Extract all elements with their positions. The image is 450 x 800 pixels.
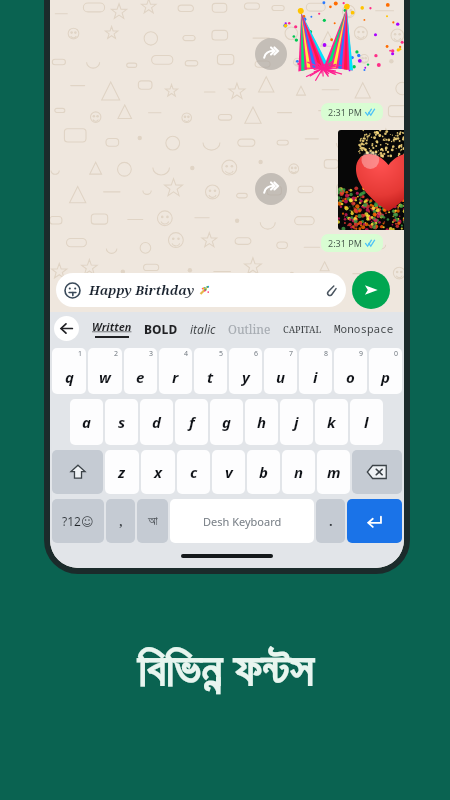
button[interactable]: . xyxy=(316,499,345,543)
button[interactable]: CAPITAL xyxy=(277,319,328,339)
button[interactable]: 9 xyxy=(334,348,367,394)
staticText: 3 xyxy=(149,349,154,359)
staticText: v xyxy=(225,462,233,482)
button[interactable]: Forward xyxy=(255,173,287,205)
staticText: 5 xyxy=(219,349,224,359)
staticText: e xyxy=(136,367,145,387)
button[interactable]: z xyxy=(105,450,139,494)
button[interactable]: Written xyxy=(86,319,138,338)
staticText: h xyxy=(257,412,267,432)
button[interactable]: italic xyxy=(184,317,222,341)
staticText: o xyxy=(346,367,355,387)
button[interactable]: 8 xyxy=(299,348,332,394)
staticText: 7 xyxy=(289,349,294,359)
button[interactable]: Monospace xyxy=(328,317,400,340)
staticText: ?12☺ xyxy=(62,513,94,529)
button[interactable]: g xyxy=(210,399,243,445)
staticText: s xyxy=(118,412,126,432)
button[interactable]: , xyxy=(106,499,135,543)
staticText: Happy Birthday xyxy=(89,281,195,299)
button[interactable]: x xyxy=(141,450,175,494)
staticText: f xyxy=(189,412,195,432)
button[interactable]: 6 xyxy=(229,348,262,394)
button[interactable]: BOLD xyxy=(138,317,184,341)
button[interactable]: c xyxy=(177,450,210,494)
button[interactable]: 0 xyxy=(369,348,402,394)
button[interactable]: Enter xyxy=(347,499,402,543)
button[interactable]: s xyxy=(105,399,138,445)
staticText: p xyxy=(381,367,390,387)
button[interactable]: n xyxy=(282,450,315,494)
other: Attach xyxy=(324,283,338,297)
button[interactable]: f xyxy=(175,399,208,445)
staticText: , xyxy=(119,512,123,530)
button[interactable]: Forward xyxy=(255,38,287,70)
staticText: k xyxy=(327,412,336,432)
button[interactable]: Desh Keyboard xyxy=(170,499,314,543)
button[interactable]: 4 xyxy=(159,348,192,394)
staticText: 6 xyxy=(254,349,259,359)
button[interactable]: Outline xyxy=(222,317,277,341)
staticText: বিভিন্ন ফন্টস xyxy=(137,636,313,700)
staticText: d xyxy=(152,412,161,432)
staticText: l xyxy=(364,412,369,432)
staticText: CAPITAL xyxy=(283,323,322,335)
button[interactable]: l xyxy=(350,399,383,445)
staticText: r xyxy=(172,367,179,387)
staticText: g xyxy=(222,412,231,432)
staticText: Outline xyxy=(228,321,271,337)
staticText: x xyxy=(154,462,163,482)
staticText: . xyxy=(329,512,333,530)
button[interactable]: v xyxy=(212,450,245,494)
staticText: 1 xyxy=(78,349,83,359)
button[interactable]: Language xyxy=(137,499,168,543)
staticText: q xyxy=(65,367,74,387)
button[interactable]: 1 xyxy=(52,348,86,394)
staticText: Monospace xyxy=(334,321,394,336)
button[interactable]: Back xyxy=(54,316,79,341)
button[interactable]: Shift xyxy=(52,450,103,494)
staticText: j xyxy=(294,412,299,432)
button[interactable]: Send xyxy=(352,271,390,309)
staticText: Written xyxy=(92,319,132,334)
button[interactable]: h xyxy=(245,399,278,445)
staticText: 2 xyxy=(114,349,119,359)
staticText: y xyxy=(242,367,250,387)
staticText: n xyxy=(294,462,304,482)
button[interactable]: Backspace xyxy=(352,450,402,494)
staticText: 2:31 PM xyxy=(328,106,362,118)
staticText: 8 xyxy=(324,349,329,359)
staticText: i xyxy=(313,367,318,387)
button[interactable]: b xyxy=(247,450,280,494)
staticText: 4 xyxy=(184,349,189,359)
button[interactable]: a xyxy=(70,399,103,445)
other: Emoji xyxy=(64,282,81,299)
button[interactable]: 3 xyxy=(124,348,157,394)
staticText: Desh Keyboard xyxy=(203,514,282,529)
staticText: 0 xyxy=(394,349,399,359)
staticText: 2:31 PM xyxy=(328,237,362,249)
button[interactable]: 7 xyxy=(264,348,297,394)
button[interactable]: m xyxy=(317,450,350,494)
staticText: m xyxy=(327,462,341,482)
button[interactable]: k xyxy=(315,399,348,445)
button[interactable]: j xyxy=(280,399,313,445)
button[interactable]: d xyxy=(140,399,173,445)
staticText: BOLD xyxy=(144,321,178,337)
staticText: a xyxy=(82,412,91,432)
staticText: u xyxy=(276,367,286,387)
button[interactable]: Emoji xyxy=(56,273,346,307)
button[interactable]: 5 xyxy=(194,348,227,394)
staticText: আ xyxy=(148,515,158,527)
button[interactable]: ?12☺ xyxy=(52,499,104,543)
staticText: b xyxy=(259,462,268,482)
staticText: 9 xyxy=(359,349,364,359)
staticText: italic xyxy=(190,321,216,337)
staticText: w xyxy=(99,367,111,387)
staticText: c xyxy=(190,462,198,482)
staticText: t xyxy=(207,367,214,387)
button[interactable]: 2 xyxy=(88,348,122,394)
staticText: z xyxy=(118,462,126,482)
